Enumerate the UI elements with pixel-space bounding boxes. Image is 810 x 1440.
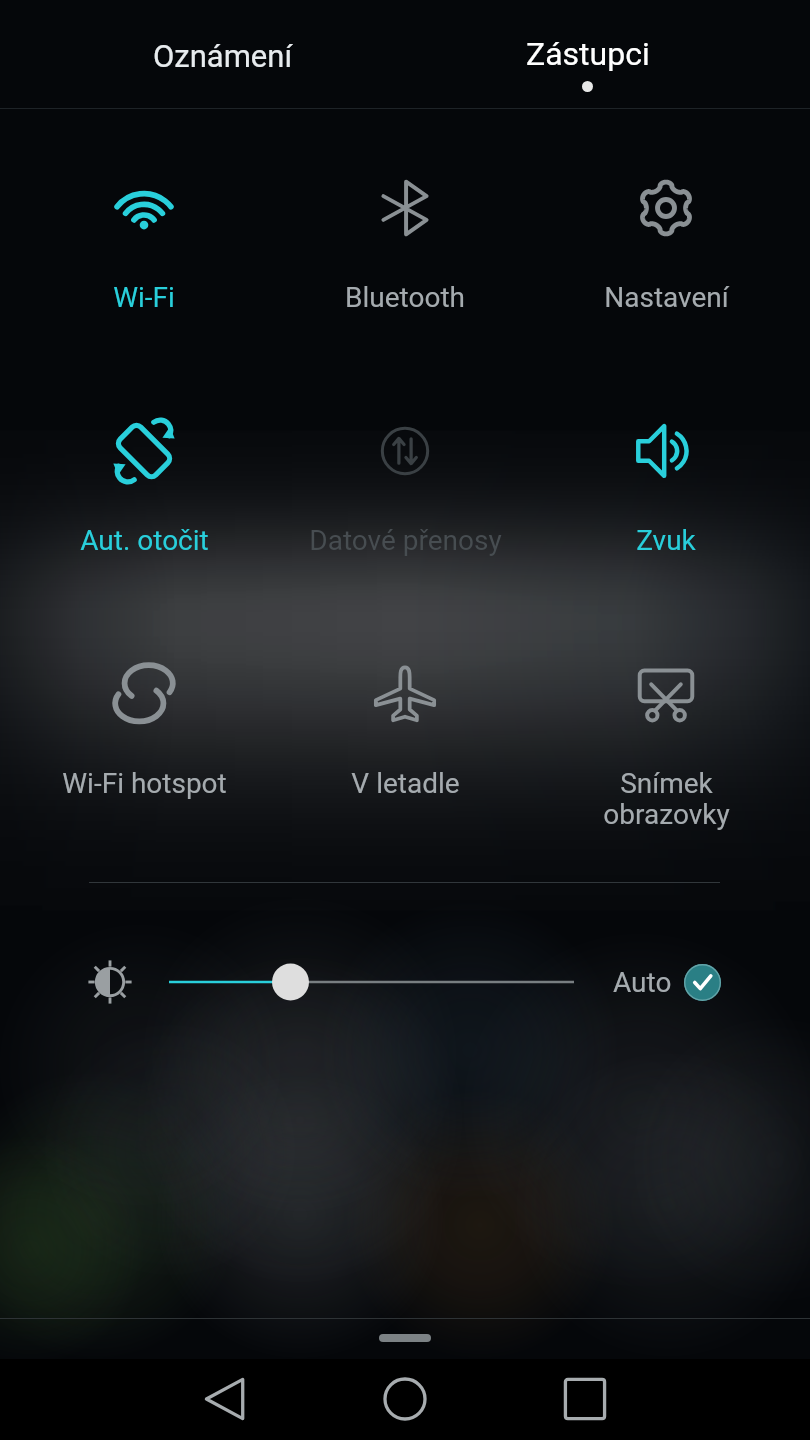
button[interactable]: Snímek obrazovky bbox=[539, 630, 793, 860]
staticText: Snímek obrazovky bbox=[603, 767, 730, 830]
button[interactable]: Nastavení bbox=[539, 144, 793, 374]
staticText: Aut. otočit bbox=[80, 524, 209, 557]
button[interactable]: Bluetooth bbox=[278, 144, 532, 374]
staticText: Zástupci bbox=[526, 35, 650, 73]
button[interactable]: Oznámení bbox=[0, 0, 405, 108]
staticText: Auto bbox=[613, 966, 672, 999]
staticText: Wi-Fi hotspot bbox=[62, 767, 227, 800]
staticText: Oznámení bbox=[153, 38, 293, 74]
button[interactable]: Home bbox=[360, 1361, 450, 1437]
staticText: Datové přenosy bbox=[309, 524, 502, 557]
button[interactable]: Brightness slider bbox=[150, 952, 593, 1012]
staticText: V letadle bbox=[351, 767, 460, 800]
button[interactable]: Aut. otočit bbox=[17, 387, 271, 617]
staticText: Nastavení bbox=[604, 281, 729, 314]
button[interactable]: V letadle bbox=[278, 630, 532, 860]
staticText: Wi-Fi bbox=[113, 281, 175, 314]
button[interactable]: Wi-Fi hotspot bbox=[17, 630, 271, 860]
button[interactable]: Brightness bbox=[72, 944, 148, 1020]
button[interactable]: Back bbox=[181, 1361, 271, 1437]
staticText: Bluetooth bbox=[345, 281, 465, 314]
button[interactable]: Datové přenosy bbox=[278, 387, 532, 617]
button[interactable]: Zástupci bbox=[405, 0, 810, 108]
button[interactable]: Wi-Fi bbox=[17, 144, 271, 374]
button[interactable]: Auto bbox=[613, 952, 721, 1012]
staticText: Zvuk bbox=[636, 524, 696, 557]
button[interactable]: Zvuk bbox=[539, 387, 793, 617]
button[interactable]: Recent apps bbox=[540, 1361, 630, 1437]
